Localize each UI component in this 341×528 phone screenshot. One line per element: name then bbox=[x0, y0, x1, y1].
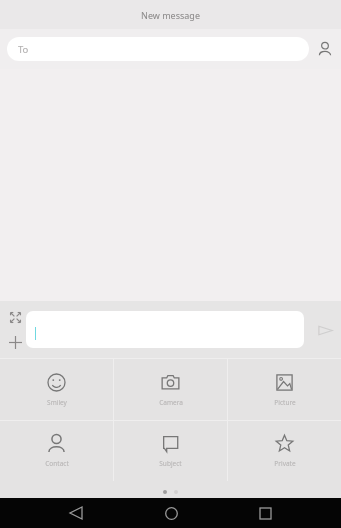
button[interactable]: To bbox=[7, 37, 309, 61]
button[interactable]: Send bbox=[309, 314, 341, 346]
button[interactable]: Back bbox=[58, 498, 94, 528]
button[interactable]: Camera bbox=[114, 359, 227, 420]
staticText: Contact bbox=[45, 459, 69, 468]
button[interactable]: Contact bbox=[0, 421, 113, 481]
staticText: New message bbox=[141, 9, 200, 21]
button[interactable]: Picture bbox=[228, 359, 341, 420]
button[interactable]: Home bbox=[153, 498, 189, 528]
staticText: Camera bbox=[159, 398, 183, 407]
staticText: Picture bbox=[274, 398, 296, 407]
button[interactable] bbox=[26, 311, 304, 348]
button[interactable]: Private bbox=[228, 421, 341, 481]
button[interactable]: Add attachment bbox=[3, 330, 27, 354]
button[interactable]: Subject bbox=[114, 421, 227, 481]
staticText: Private bbox=[274, 459, 296, 468]
button[interactable]: Expand bbox=[3, 305, 27, 329]
staticText: Smiley bbox=[47, 398, 67, 407]
staticText: Subject bbox=[159, 459, 182, 468]
button[interactable]: Choose contact bbox=[309, 33, 341, 65]
button[interactable]: Smiley bbox=[0, 359, 113, 420]
button[interactable]: Recent apps bbox=[247, 498, 283, 528]
staticText: To bbox=[18, 43, 29, 56]
